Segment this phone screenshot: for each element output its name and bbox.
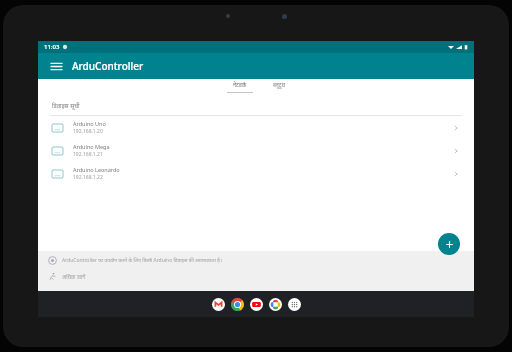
button[interactable]: Arduino Mega xyxy=(38,139,474,162)
staticText: ArduController xyxy=(72,59,144,73)
button[interactable]: Photos xyxy=(269,298,282,311)
button[interactable]: Gmail xyxy=(212,298,225,311)
other: Open Arduino Mega xyxy=(450,145,462,157)
button[interactable]: Open navigation menu xyxy=(47,57,65,75)
staticText: 192.168.1.21 xyxy=(73,151,103,158)
staticText: अधिक जानें xyxy=(62,273,86,280)
staticText: 192.168.1.22 xyxy=(73,174,103,181)
staticText: ArduController का उपयोग करने के लिए किसी… xyxy=(62,257,222,264)
other: Open Arduino Uno xyxy=(450,122,462,134)
button[interactable]: ब्लूटूथ xyxy=(267,81,291,88)
staticText: Arduino Mega xyxy=(73,143,110,150)
staticText: 192.168.1.20 xyxy=(73,128,103,135)
button[interactable]: YouTube xyxy=(250,298,263,311)
button[interactable]: अधिक जानें xyxy=(48,272,86,281)
staticText: 11:03 xyxy=(44,43,60,51)
button[interactable]: Arduino Leonardo xyxy=(38,162,474,185)
other: Open Arduino Leonardo xyxy=(450,168,462,180)
button[interactable]: नेटवर्क xyxy=(221,81,259,93)
staticText: नेटवर्क xyxy=(233,81,247,88)
staticText: Arduino Uno xyxy=(73,120,106,127)
button[interactable]: Arduino Uno xyxy=(38,116,474,139)
button[interactable]: Add device xyxy=(438,233,460,255)
button[interactable]: Chrome xyxy=(231,298,244,311)
button[interactable]: All apps xyxy=(288,298,301,311)
staticText: डिवाइस सूची xyxy=(52,102,80,110)
staticText: ब्लूटूथ xyxy=(273,81,285,88)
staticText: Arduino Leonardo xyxy=(73,166,120,173)
